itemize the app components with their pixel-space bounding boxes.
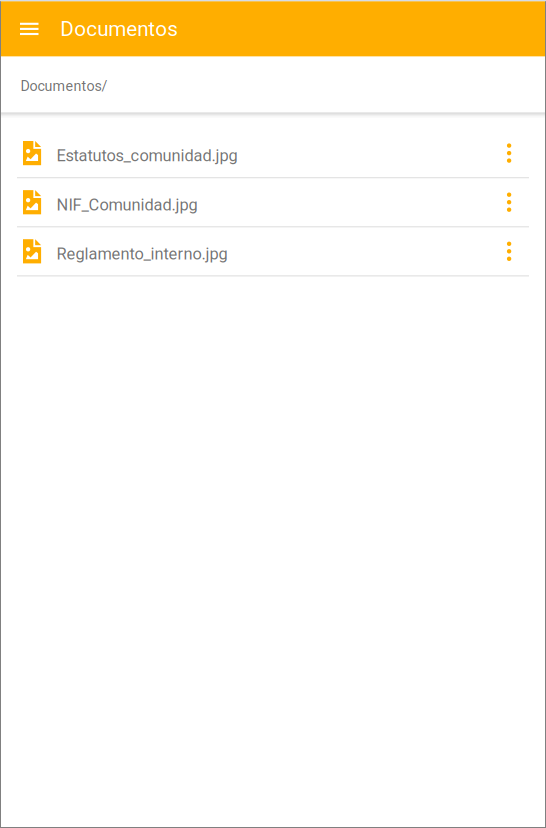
staticText: Documentos/ xyxy=(21,78,108,94)
button[interactable]: NIF_Comunidad.jpg xyxy=(0,178,492,226)
staticText: Documentos xyxy=(60,17,178,41)
button[interactable]: More options for Reglamento_interno.jpg xyxy=(492,227,546,275)
button[interactable]: More options for NIF_Comunidad.jpg xyxy=(492,178,546,226)
staticText: Reglamento_interno.jpg xyxy=(56,244,227,263)
button[interactable]: Reglamento_interno.jpg xyxy=(0,227,492,275)
staticText: NIF_Comunidad.jpg xyxy=(56,195,197,214)
button[interactable]: Documentos/ xyxy=(0,57,108,112)
button[interactable]: Menu xyxy=(0,1,38,57)
button[interactable]: More options for Estatutos_comunidad.jpg xyxy=(492,129,546,177)
button[interactable]: Estatutos_comunidad.jpg xyxy=(0,129,492,177)
staticText: Estatutos_comunidad.jpg xyxy=(56,146,237,165)
